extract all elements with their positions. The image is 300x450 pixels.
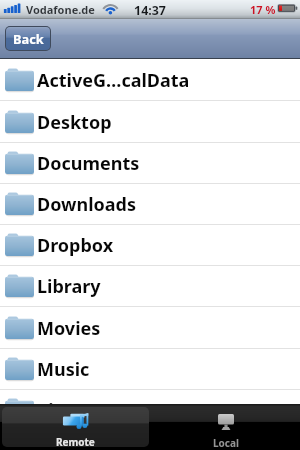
button[interactable]: Music <box>0 349 300 390</box>
button[interactable]: Dropbox <box>0 225 300 266</box>
staticText: Local <box>213 436 239 447</box>
button[interactable]: Back <box>6 27 50 50</box>
staticText: Movies <box>37 316 101 341</box>
staticText: 14:37 <box>0 2 300 19</box>
button[interactable]: Remote <box>2 407 149 447</box>
staticText: Music <box>37 357 90 382</box>
staticText: Desktop <box>37 110 112 135</box>
button[interactable]: Documents <box>0 143 300 184</box>
staticText: ActiveG…calData <box>37 68 190 93</box>
button[interactable]: Movies <box>0 308 300 349</box>
staticText: Dropbox <box>37 233 114 258</box>
button[interactable]: Downloads <box>0 184 300 225</box>
staticText: Library <box>37 274 101 299</box>
button[interactable]: Library <box>0 266 300 307</box>
staticText: Remote <box>56 435 95 447</box>
staticText: Pictures <box>37 398 110 423</box>
button[interactable]: Local <box>152 407 299 447</box>
staticText: Vodafone.de <box>26 2 95 17</box>
staticText: Back <box>13 30 44 47</box>
staticText: 17 % <box>250 2 276 17</box>
button[interactable]: Desktop <box>0 102 300 143</box>
button[interactable]: Pictures <box>0 390 300 431</box>
staticText: Documents <box>37 151 140 176</box>
button[interactable]: ActiveG…calData <box>0 60 300 101</box>
staticText: Downloads <box>37 192 136 217</box>
